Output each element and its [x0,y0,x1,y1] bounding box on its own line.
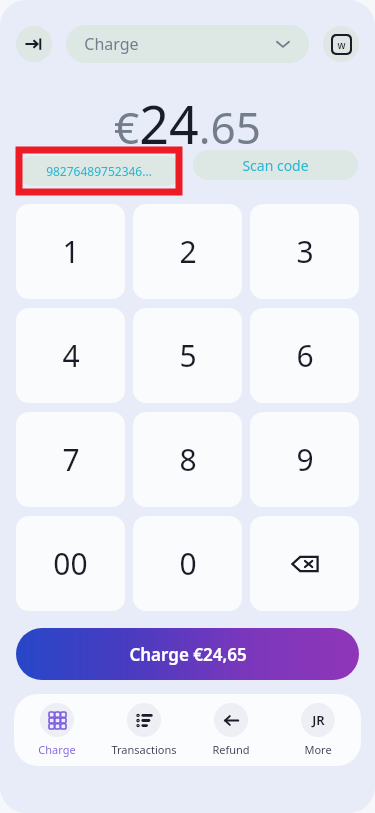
staticText: 8 [179,439,197,480]
staticText: €24.65 [114,88,261,150]
staticText: Charge [38,742,76,757]
staticText: Charge [84,33,139,55]
staticText: 98276489752346... [46,163,152,179]
button[interactable]: Backspace [250,516,359,611]
button[interactable]: 9 [250,412,359,507]
staticText: 1 [62,231,80,272]
button[interactable]: 7 [16,412,125,507]
button[interactable]: 2 [133,204,242,299]
button[interactable]: 1 [16,204,125,299]
staticText: 0 [179,543,197,584]
staticText: w [337,38,346,52]
staticText: Charge €24,65 [129,643,247,666]
staticText: 6 [296,335,314,376]
button[interactable]: Sign in [16,26,52,62]
button[interactable]: 5 [133,308,242,403]
staticText: More [304,742,332,757]
button[interactable]: 98276489752346... [17,156,181,186]
button[interactable]: Charge [84,25,291,63]
staticText: Refund [212,742,250,757]
button[interactable]: 4 [16,308,125,403]
button[interactable]: JR [274,703,361,757]
button[interactable]: Charge [14,703,100,757]
button[interactable]: Charge €24,65 [16,628,359,680]
button[interactable]: Scan code [193,150,358,180]
staticText: 5 [179,335,197,376]
button[interactable]: 3 [250,204,359,299]
button[interactable]: Transactions [100,703,187,757]
staticText: 3 [296,231,314,272]
button[interactable]: 6 [250,308,359,403]
staticText: JR [312,711,325,729]
staticText: 7 [62,439,80,480]
staticText: Transactions [111,742,177,757]
button[interactable]: 00 [16,516,125,611]
staticText: 4 [62,335,80,376]
staticText: 00 [53,543,88,584]
button[interactable]: 8 [133,412,242,507]
button[interactable]: 0 [133,516,242,611]
staticText: Scan code [242,156,309,175]
staticText: 9 [296,439,314,480]
button[interactable]: Refund [187,703,274,757]
staticText: 2 [179,231,197,272]
button[interactable]: Wallet [323,26,359,62]
